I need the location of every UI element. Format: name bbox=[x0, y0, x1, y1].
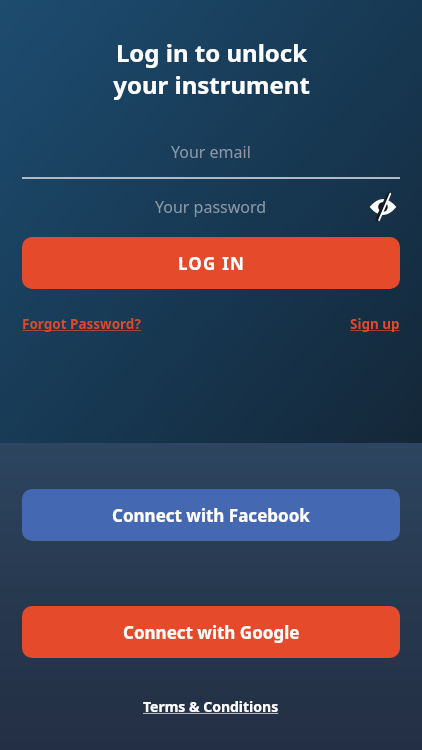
staticText: Your password bbox=[155, 196, 267, 218]
button[interactable]: LOG IN bbox=[22, 237, 400, 289]
button[interactable]: Your email bbox=[0, 127, 422, 177]
staticText: Your email bbox=[171, 141, 251, 163]
staticText: LOG IN bbox=[178, 252, 245, 275]
staticText: Forgot Password? bbox=[22, 315, 141, 333]
button[interactable]: Connect with Google bbox=[22, 606, 400, 658]
staticText: Log in to unlock your instrument bbox=[113, 36, 310, 101]
button[interactable]: Connect with Facebook bbox=[22, 489, 400, 541]
staticText: Sign up bbox=[350, 315, 400, 333]
staticText: Connect with Google bbox=[123, 621, 300, 644]
button[interactable]: Forgot Password? bbox=[22, 315, 141, 333]
button[interactable]: Your password bbox=[0, 179, 422, 234]
staticText: Terms & Conditions bbox=[143, 697, 279, 716]
button[interactable]: Show password bbox=[366, 190, 400, 224]
staticText: Connect with Facebook bbox=[112, 504, 310, 527]
button[interactable]: Sign up bbox=[350, 315, 400, 333]
button[interactable]: Terms & Conditions bbox=[143, 697, 279, 716]
